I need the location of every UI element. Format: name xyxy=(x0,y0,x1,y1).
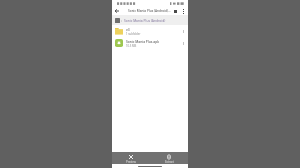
button[interactable]: Back xyxy=(113,7,121,15)
staticText: Sonic Mania Plus (Android)… xyxy=(128,9,171,13)
button[interactable]: More options xyxy=(179,7,187,15)
button[interactable]: Extract xyxy=(150,152,188,164)
staticText: Sonic Mania Plus (Android) xyxy=(124,18,166,22)
staticText: Preview xyxy=(126,160,136,164)
button[interactable]: v3 xyxy=(112,25,188,37)
button[interactable]: Grid view xyxy=(171,7,179,15)
button[interactable]: Item menu xyxy=(179,39,187,47)
staticText: Extract xyxy=(165,160,174,164)
staticText: › xyxy=(121,18,123,22)
button[interactable]: Preview xyxy=(112,152,150,164)
staticText: 10.5 MB xyxy=(126,44,137,48)
button[interactable]: Item menu xyxy=(179,27,187,35)
button[interactable]: Sonic Mania Plus.apk xyxy=(112,37,188,49)
staticText: 1 subfolder xyxy=(126,32,141,36)
button[interactable]: › xyxy=(112,15,188,25)
staticText: v3 xyxy=(126,27,130,31)
staticText: Sonic Mania Plus.apk xyxy=(126,39,160,43)
